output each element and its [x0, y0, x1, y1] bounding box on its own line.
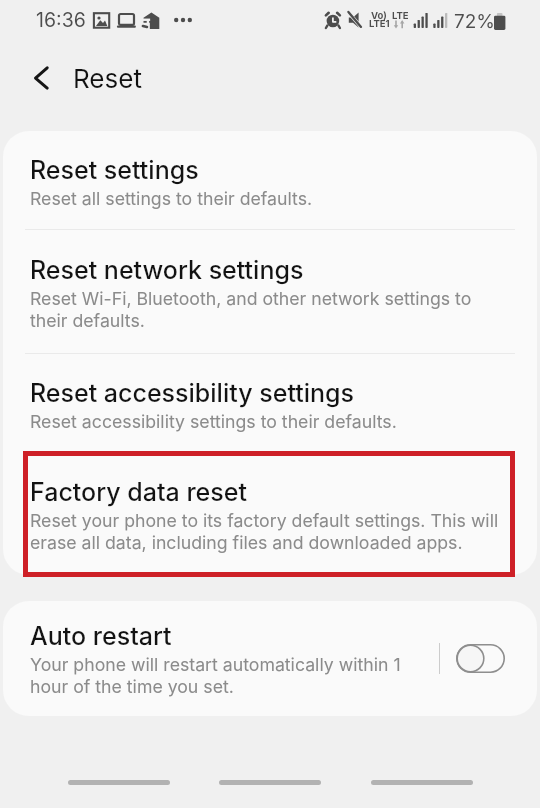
- staticText: Reset network settings: [30, 255, 304, 285]
- button[interactable]: Reset settings: [3, 131, 537, 229]
- staticText: Reset Wi-Fi, Bluetooth, and other networ…: [30, 287, 508, 331]
- staticText: Reset all settings to their defaults.: [30, 187, 313, 209]
- button[interactable]: Home: [219, 780, 321, 785]
- staticText: Reset accessibility settings: [30, 378, 355, 408]
- staticText: Reset accessibility settings to their de…: [30, 410, 397, 432]
- button[interactable]: Navigate up: [14, 56, 58, 100]
- staticText: Reset: [73, 63, 142, 94]
- staticText: Factory data reset: [30, 477, 247, 507]
- staticText: Vo): [371, 11, 387, 21]
- staticText: 16:36: [36, 10, 86, 31]
- staticText: 72%: [454, 10, 495, 32]
- button[interactable]: Reset network settings: [3, 230, 537, 353]
- staticText: Reset settings: [30, 155, 199, 185]
- button[interactable]: Reset accessibility settings: [3, 354, 537, 451]
- button[interactable]: Recents: [68, 780, 170, 785]
- button[interactable]: Auto restart: [3, 601, 537, 716]
- staticText: LTE1: [369, 19, 390, 29]
- button[interactable]: Factory data reset: [3, 452, 537, 571]
- button[interactable]: Auto restart switch: [456, 644, 505, 673]
- staticText: Reset your phone to its factory default …: [30, 509, 508, 553]
- staticText: Your phone will restart automatically wi…: [30, 653, 425, 697]
- staticText: LTE: [392, 11, 409, 21]
- staticText: Auto restart: [30, 621, 172, 651]
- button[interactable]: Back: [371, 780, 473, 785]
